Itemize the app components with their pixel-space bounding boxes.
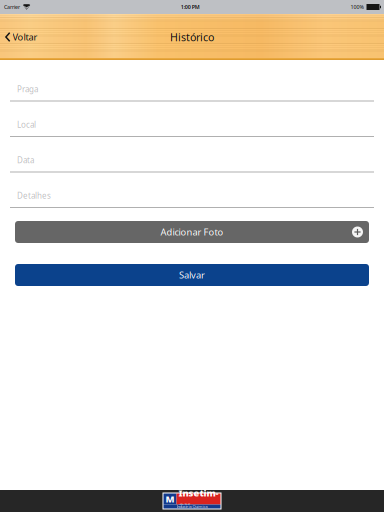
- staticText: Carrier: [4, 3, 20, 11]
- staticText: Histórico: [170, 30, 214, 44]
- staticText: 1:00 PM: [181, 3, 200, 11]
- button[interactable]: Salvar: [15, 264, 369, 286]
- staticText: Local: [17, 119, 36, 130]
- staticText: Industria Quimica: [176, 504, 207, 509]
- staticText: 100%: [350, 3, 363, 11]
- staticText: Salvar: [179, 269, 205, 281]
- staticText: Detalhes: [17, 190, 51, 201]
- staticText: Praga: [17, 84, 38, 94]
- button[interactable]: Voltar: [0, 25, 43, 49]
- staticText: M: [165, 493, 174, 505]
- staticText: Adicionar Foto: [160, 226, 223, 238]
- staticText: Data: [17, 155, 34, 165]
- button[interactable]: Adicionar Foto: [15, 221, 369, 243]
- staticText: Insetimax: [178, 487, 218, 511]
- staticText: Voltar: [13, 31, 38, 43]
